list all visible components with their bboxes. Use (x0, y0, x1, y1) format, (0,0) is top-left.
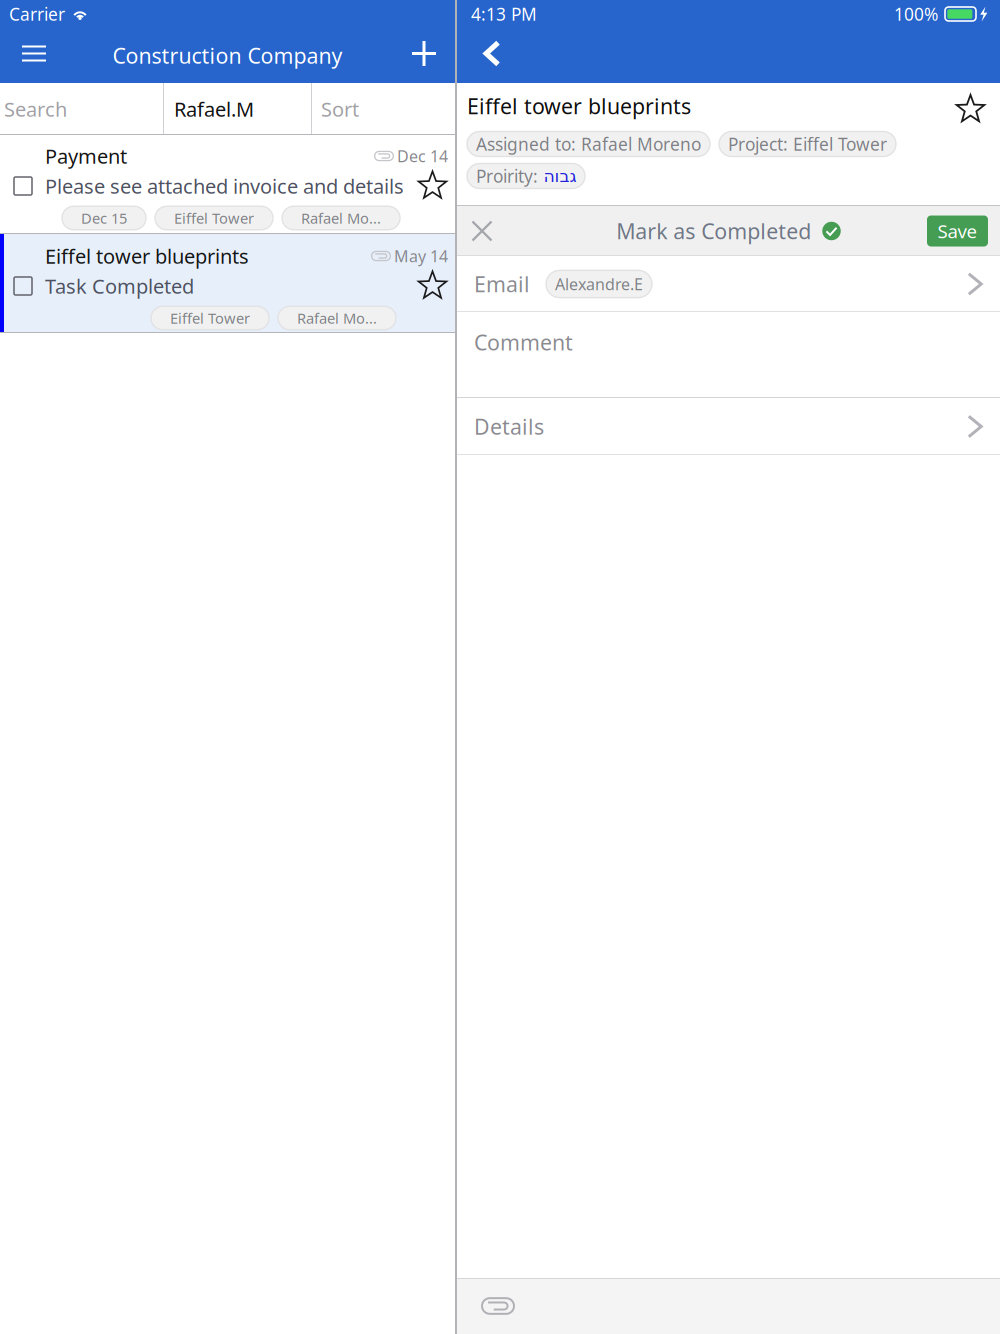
button[interactable]: Complete Payment (14, 177, 32, 195)
button[interactable]: Save (927, 215, 988, 246)
staticText: Alexandre.E (555, 273, 643, 295)
staticText: Project: Eiffel Tower (728, 132, 887, 155)
staticText: Comment (474, 328, 573, 356)
button[interactable]: Complete Eiffel tower blueprints (14, 277, 32, 295)
button[interactable]: Flag Eiffel tower blueprints (417, 270, 448, 301)
button[interactable]: Comment (457, 312, 1000, 398)
button[interactable]: Flag Payment (417, 170, 448, 201)
staticText: Dec 15 (81, 208, 127, 228)
staticText: Please see attached invoice and details (45, 173, 404, 199)
staticText: 100% (894, 2, 938, 25)
staticText: גבוה (543, 166, 576, 186)
staticText: Dec 14 (397, 145, 448, 167)
staticText: Eiffel tower blueprints (45, 243, 249, 269)
staticText: Proirity: (476, 164, 543, 187)
button[interactable]: Attach (470, 1283, 526, 1329)
staticText: Rafael Mo... (301, 208, 381, 228)
button[interactable]: Eiffel tower blueprints (0, 234, 455, 333)
button[interactable]: Payment (0, 135, 455, 234)
button[interactable]: Search (0, 83, 163, 135)
button[interactable]: Email (457, 256, 1000, 312)
button[interactable]: Sort (312, 83, 455, 135)
staticText: Email (474, 270, 530, 298)
button[interactable]: Rafael.M (164, 83, 311, 135)
button[interactable]: Close (462, 209, 502, 253)
staticText: Payment (45, 143, 127, 169)
staticText: 4:13 PM (471, 2, 537, 25)
button[interactable]: Menu (10, 29, 58, 77)
button[interactable]: Favourite (955, 87, 990, 125)
staticText: Eiffel Tower (170, 308, 250, 328)
staticText: Assigned to: Rafael Moreno (476, 132, 701, 155)
staticText: Mark as Completed (616, 217, 811, 245)
staticText: Carrier (9, 2, 65, 25)
button[interactable]: Details (457, 398, 1000, 455)
staticText: Search (4, 96, 67, 122)
staticText: Rafael.M (174, 96, 254, 122)
staticText: Details (474, 412, 544, 441)
staticText: Save (937, 219, 977, 243)
staticText: Rafael Mo... (297, 308, 377, 328)
staticText: Sort (321, 96, 359, 122)
staticText: Eiffel Tower (174, 208, 254, 228)
staticText: Construction Company (112, 41, 342, 70)
button[interactable]: Back (468, 29, 516, 77)
staticText: May 14 (394, 245, 448, 267)
staticText: Eiffel tower blueprints (467, 92, 691, 120)
staticText: Task Completed (45, 273, 194, 299)
button[interactable]: Add (400, 29, 448, 77)
